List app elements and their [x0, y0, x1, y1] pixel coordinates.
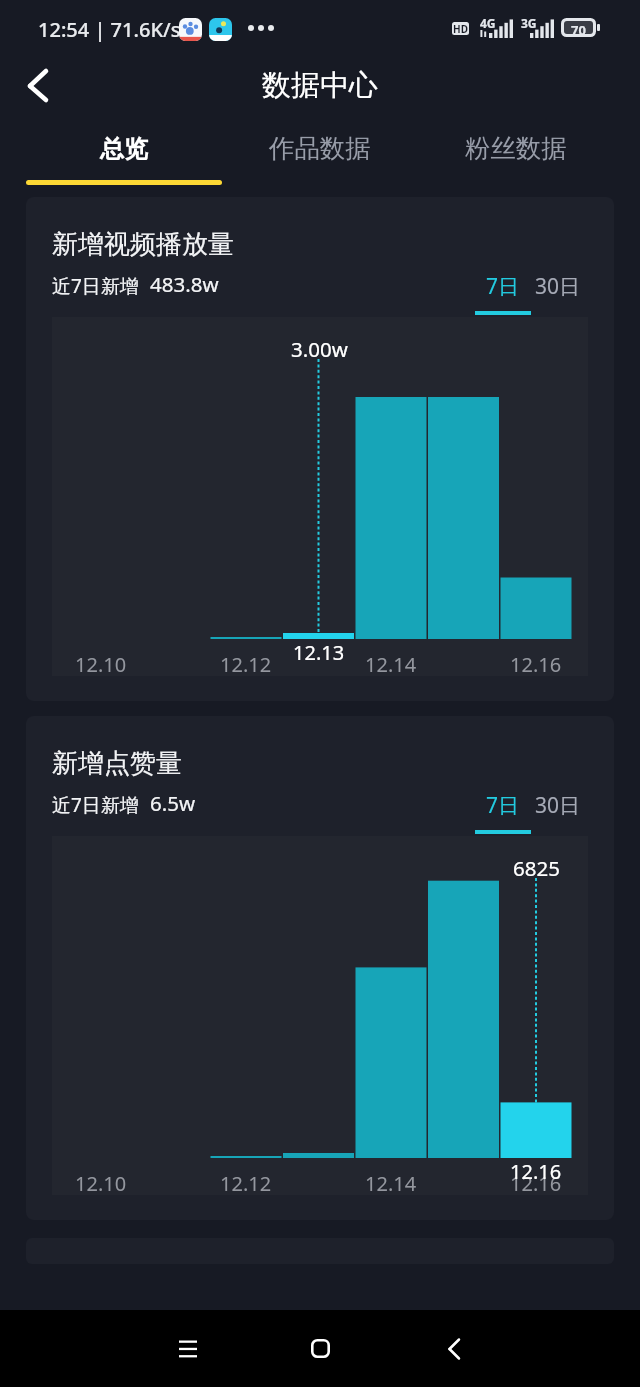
staticText: 12.16: [510, 651, 562, 678]
staticText: 483.8w: [150, 270, 219, 298]
staticText: 3G: [521, 15, 537, 31]
staticText: 12.16: [510, 1158, 562, 1185]
button[interactable]: 30日: [528, 789, 587, 834]
button[interactable]: Back: [424, 1319, 484, 1379]
staticText: 70: [571, 21, 586, 34]
staticText: 12.16: [510, 1170, 562, 1197]
button[interactable]: 作品数据: [222, 114, 418, 180]
staticText: 近7日新增: [52, 792, 139, 818]
staticText: 总览: [100, 134, 148, 164]
staticText: 4G: [480, 15, 496, 31]
staticText: 30日: [535, 791, 581, 820]
button[interactable]: 30日: [528, 270, 587, 315]
staticText: 30日: [535, 272, 581, 301]
button[interactable]: 7日: [469, 789, 537, 834]
staticText: 12.13: [293, 639, 345, 666]
staticText: 作品数据: [269, 133, 371, 165]
staticText: 12.14: [365, 651, 417, 678]
staticText: 近7日新增: [52, 273, 139, 299]
staticText: 6.5w: [150, 789, 196, 817]
staticText: 粉丝数据: [465, 133, 567, 165]
button[interactable]: Home: [290, 1318, 350, 1378]
staticText: HD: [453, 22, 468, 35]
staticText: 12.14: [365, 1170, 417, 1197]
staticText: 12.10: [75, 1170, 127, 1197]
staticText: 数据中心: [262, 67, 378, 104]
staticText: 新增点赞量: [52, 747, 182, 780]
staticText: 7日: [486, 791, 520, 820]
staticText: 7日: [486, 272, 520, 301]
staticText: 12.12: [220, 1170, 272, 1197]
button[interactable]: 总览: [26, 114, 222, 180]
button[interactable]: 粉丝数据: [418, 114, 614, 180]
staticText: 6825: [513, 854, 560, 882]
staticText: 3.00w: [291, 335, 348, 363]
staticText: 12:54 | 71.6K/s: [38, 16, 181, 43]
button[interactable]: Back: [22, 66, 62, 106]
button[interactable]: Recent apps: [158, 1319, 218, 1379]
staticText: 12.12: [220, 651, 272, 678]
staticText: 新增视频播放量: [52, 228, 234, 261]
staticText: 12.10: [75, 651, 127, 678]
button[interactable]: 7日: [469, 270, 537, 315]
